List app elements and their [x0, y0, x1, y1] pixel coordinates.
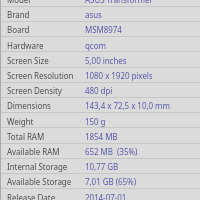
staticText: Internal Storage: [7, 161, 68, 172]
staticText: qcom: [85, 40, 106, 51]
button[interactable]: Screen Density: [0, 82, 200, 97]
button[interactable]: Available Storage: [0, 173, 200, 188]
staticText: 143,4 x 72,5 x 10,0 mm: [85, 100, 170, 111]
staticText: Model: [7, 0, 31, 5]
button[interactable]: Release Date: [0, 189, 200, 200]
button[interactable]: Hardware: [0, 37, 200, 52]
staticText: 5,00 inches: [85, 55, 127, 66]
button[interactable]: Screen Resolution: [0, 67, 200, 82]
staticText: Available RAM: [7, 146, 60, 157]
staticText: Hardware: [7, 40, 44, 51]
staticText: 1854 MB: [85, 131, 118, 142]
staticText: Total RAM: [7, 131, 45, 142]
staticText: Brand: [7, 9, 30, 20]
staticText: asus: [85, 9, 102, 20]
staticText: 480 dpi: [85, 85, 113, 96]
button[interactable]: Model: [0, 0, 200, 6]
staticText: 150 g: [85, 116, 106, 127]
staticText: 7,01 GB (65%): [85, 176, 137, 187]
staticText: 10,77 GB: [85, 161, 119, 172]
staticText: Screen Density: [7, 85, 62, 96]
button[interactable]: Total RAM: [0, 128, 200, 143]
staticText: Release Date: [7, 192, 56, 200]
staticText: 1080 x 1920 pixels: [85, 70, 153, 81]
staticText: Dimensions: [7, 100, 51, 111]
button[interactable]: Screen Size: [0, 52, 200, 67]
button[interactable]: Internal Storage: [0, 158, 200, 173]
button[interactable]: Available RAM: [0, 143, 200, 158]
staticText: Board: [7, 24, 30, 35]
staticText: ASUS Transformer: [85, 0, 153, 5]
button[interactable]: Dimensions: [0, 97, 200, 112]
staticText: Available Storage: [7, 176, 72, 187]
staticText: Screen Size: [7, 55, 49, 66]
button[interactable]: Weight: [0, 113, 200, 128]
button[interactable]: Brand: [0, 6, 200, 21]
staticText: 2014-07-01: [85, 192, 127, 200]
staticText: 652 MB (35%): [85, 146, 138, 157]
staticText: Weight: [7, 116, 34, 127]
button[interactable]: Board: [0, 21, 200, 36]
staticText: Screen Resolution: [7, 70, 74, 81]
staticText: MSM8974: [85, 24, 122, 35]
